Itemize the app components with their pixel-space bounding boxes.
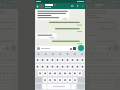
button[interactable]: [37, 46, 76, 51]
button[interactable]: Back: [35, 3, 85, 9]
button[interactable]: Video call: [71, 4, 75, 8]
button[interactable]: Video call: [4, 4, 8, 8]
button[interactable]: [35, 9, 85, 45]
button[interactable]: Send: [11, 45, 17, 51]
button[interactable]: [0, 46, 9, 51]
button[interactable]: Send: [113, 45, 119, 51]
button[interactable]: [87, 46, 111, 51]
button[interactable]: Back: [85, 3, 120, 9]
button[interactable]: Send: [78, 45, 84, 51]
button[interactable]: Video call: [106, 4, 110, 8]
other: Back: [36, 5, 39, 8]
button[interactable]: More options: [81, 4, 85, 8]
button[interactable]: [35, 51, 85, 90]
other: Back: [86, 5, 89, 8]
button[interactable]: Back: [85, 0, 120, 90]
button[interactable]: Back: [0, 3, 18, 9]
button[interactable]: Back: [0, 0, 35, 90]
button[interactable]: Call: [76, 4, 80, 8]
